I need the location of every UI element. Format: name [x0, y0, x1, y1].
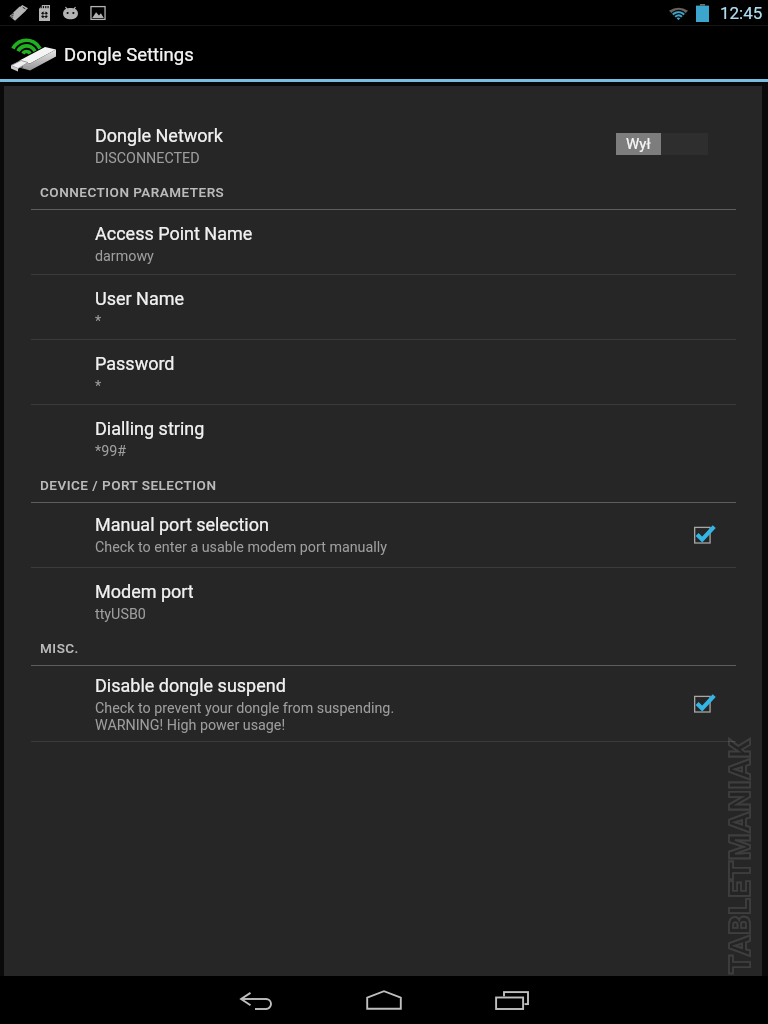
staticText: * — [95, 313, 102, 330]
button[interactable]: Disable dongle suspend — [4, 666, 762, 741]
button[interactable]: Dongle Network — [4, 125, 762, 167]
staticText: DEVICE / PORT SELECTION — [40, 477, 217, 493]
staticText: darmowy — [95, 248, 154, 265]
button[interactable]: Manual port selection — [4, 503, 762, 567]
staticText: Dialling string — [95, 418, 205, 439]
staticText: User Name — [95, 288, 185, 309]
staticText: MISC. — [40, 640, 79, 656]
staticText: Dongle Settings — [64, 44, 194, 66]
staticText: DISCONNECTED — [95, 150, 200, 167]
staticText: Dongle Network — [95, 125, 223, 146]
staticText: * — [95, 378, 102, 395]
button[interactable]: User Name — [4, 275, 762, 339]
staticText: Check to enter a usable modem port manua… — [95, 539, 387, 556]
button[interactable]: Dongle network switch, off — [616, 133, 708, 155]
button[interactable]: Modem port — [4, 568, 762, 632]
button[interactable]: Dialling string — [4, 405, 762, 469]
other: Checkbox, checked — [694, 694, 716, 714]
staticText: 12:45 — [720, 3, 763, 23]
other: Checkbox, checked — [694, 525, 716, 545]
staticText: Check to prevent your dongle from suspen… — [95, 700, 395, 733]
staticText: Password — [95, 353, 175, 374]
staticText: CONNECTION PARAMETERS — [40, 184, 225, 200]
staticText: Manual port selection — [95, 514, 269, 535]
button[interactable]: Recent apps — [448, 976, 576, 1024]
staticText: ttyUSB0 — [95, 606, 146, 623]
button[interactable]: Home — [320, 976, 448, 1024]
staticText: Modem port — [95, 581, 194, 602]
staticText: Disable dongle suspend — [95, 675, 286, 696]
staticText: Access Point Name — [95, 223, 253, 244]
button[interactable]: Password — [4, 340, 762, 404]
button[interactable]: Access Point Name — [4, 210, 762, 274]
staticText: Wył — [626, 135, 651, 153]
staticText: *99# — [95, 443, 127, 460]
button[interactable]: Back — [192, 976, 320, 1024]
